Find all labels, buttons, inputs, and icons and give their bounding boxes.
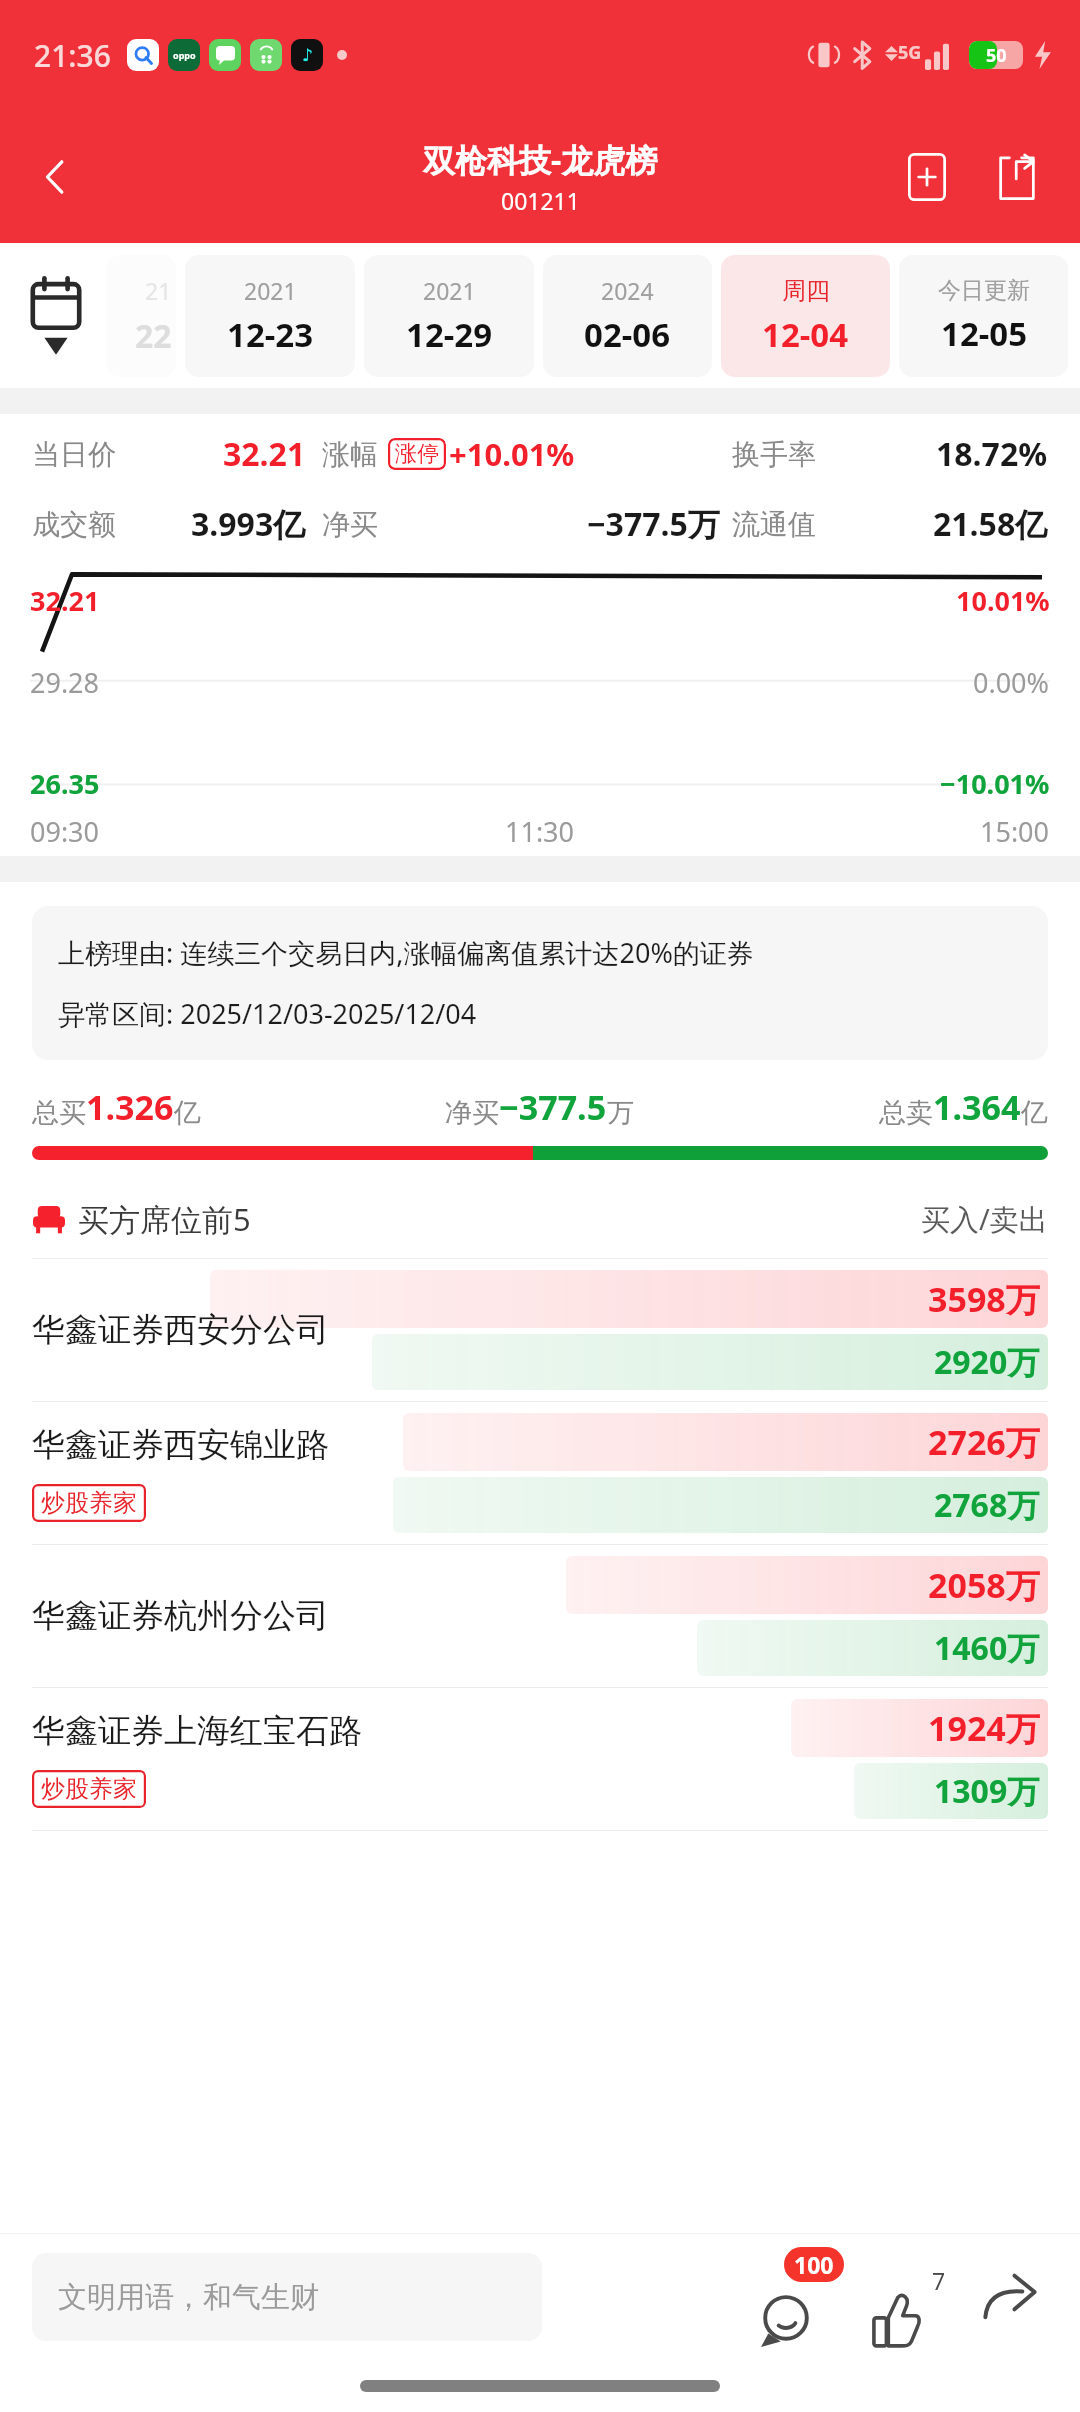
staticText: 11:30: [505, 813, 575, 850]
staticText: 万: [607, 1096, 634, 1130]
button[interactable]: 文明用语，和气生财: [32, 2253, 542, 2341]
staticText: 0.00%: [973, 664, 1050, 701]
staticText: 09:30: [30, 813, 100, 850]
staticText: 7: [932, 2265, 946, 2296]
staticText: 买入/卖出: [921, 1199, 1048, 1239]
staticText: 今日更新: [938, 276, 1030, 305]
staticText: 1460万: [934, 1626, 1040, 1670]
staticText: 2021: [423, 275, 476, 306]
staticText: 12-05: [941, 311, 1028, 356]
staticText: −377.5万: [587, 502, 720, 546]
staticText: 21:36: [34, 35, 111, 76]
staticText: 1924万: [928, 1705, 1040, 1751]
staticText: 华鑫证券上海红宝石路: [32, 1710, 362, 1752]
staticText: 3.993亿: [191, 502, 306, 546]
staticText: 当日价: [32, 437, 116, 472]
staticText: ♪: [302, 45, 313, 65]
staticText: 2024: [601, 275, 654, 306]
staticText: 华鑫证券西安锦业路: [32, 1424, 329, 1466]
staticText: 100: [794, 2249, 834, 2280]
staticText: 2920万: [934, 1340, 1040, 1384]
staticText: 周四: [782, 276, 830, 306]
button[interactable]: 2726万: [0, 1402, 1080, 1545]
button[interactable]: 2021: [364, 255, 534, 377]
staticText: 文明用语，和气生财: [58, 2279, 319, 2316]
staticText: 29.28: [30, 664, 100, 701]
staticText: 2058万: [928, 1562, 1040, 1608]
staticText: 26.35: [30, 765, 100, 802]
staticText: 炒股养家: [41, 1488, 137, 1518]
staticText: 上榜理由: 连续三个交易日内,涨幅偏离值累计达20%的证券: [58, 934, 754, 971]
staticText: 50: [986, 43, 1007, 68]
staticText: 18.72%: [936, 432, 1048, 476]
button[interactable]: 2024: [543, 255, 712, 377]
staticText: 买方席位前5: [78, 1198, 251, 1240]
staticText: 12-04: [762, 312, 849, 357]
staticText: 21.58亿: [933, 502, 1048, 546]
staticText: 亿: [174, 1096, 201, 1130]
button[interactable]: 3598万: [0, 1259, 1080, 1402]
staticText: 001211: [501, 185, 580, 216]
staticText: 15:00: [980, 813, 1050, 850]
staticText: 双枪科技-龙虎榜: [423, 138, 658, 182]
button[interactable]: 周四: [721, 255, 890, 377]
staticText: 涨停: [395, 440, 439, 468]
staticText: 3598万: [928, 1276, 1040, 1322]
staticText: 12-29: [406, 312, 493, 357]
staticText: 华鑫证券西安分公司: [32, 1309, 329, 1351]
staticText: 02-06: [584, 312, 671, 357]
staticText: 总卖: [879, 1096, 933, 1130]
staticText: 12-23: [227, 312, 314, 357]
staticText: oppo: [173, 49, 196, 61]
staticText: 1.364: [933, 1084, 1021, 1130]
staticText: −377.5: [499, 1084, 607, 1130]
staticText: 亿: [1021, 1096, 1048, 1130]
staticText: 21: [145, 275, 172, 306]
button[interactable]: Share: [972, 132, 1062, 222]
staticText: 1309万: [934, 1769, 1040, 1813]
staticText: 2021: [244, 275, 297, 306]
button[interactable]: Comments: [756, 2247, 856, 2347]
button[interactable]: 1924万: [0, 1688, 1080, 1831]
staticText: +10.01%: [449, 433, 575, 475]
button[interactable]: 今日更新: [899, 255, 1068, 377]
staticText: 成交额: [32, 507, 116, 542]
staticText: 32.21: [223, 432, 306, 476]
staticText: 32.21: [30, 582, 100, 619]
button[interactable]: Add: [882, 132, 972, 222]
staticText: 涨幅: [322, 437, 378, 472]
staticText: 流通值: [732, 507, 816, 542]
staticText: 22: [135, 314, 172, 358]
staticText: −10.01%: [940, 765, 1050, 802]
button[interactable]: Share: [964, 2251, 1056, 2343]
staticText: 10.01%: [956, 582, 1050, 619]
staticText: 换手率: [732, 437, 816, 472]
staticText: 2726万: [928, 1419, 1040, 1465]
button[interactable]: Back: [0, 110, 110, 243]
staticText: 5G: [898, 40, 922, 65]
staticText: 净买: [445, 1096, 499, 1130]
staticText: 净买: [322, 507, 378, 542]
staticText: 1.326: [86, 1084, 174, 1130]
button[interactable]: 2021: [185, 255, 355, 377]
button[interactable]: 2058万: [0, 1545, 1080, 1688]
button[interactable]: Like: [866, 2247, 958, 2347]
staticText: 炒股养家: [41, 1774, 137, 1804]
staticText: 2768万: [934, 1483, 1040, 1527]
staticText: 华鑫证券杭州分公司: [32, 1595, 329, 1637]
button[interactable]: Calendar: [6, 243, 106, 388]
staticText: 异常区间: 2025/12/03-2025/12/04: [58, 995, 477, 1032]
staticText: 总买: [32, 1096, 86, 1130]
